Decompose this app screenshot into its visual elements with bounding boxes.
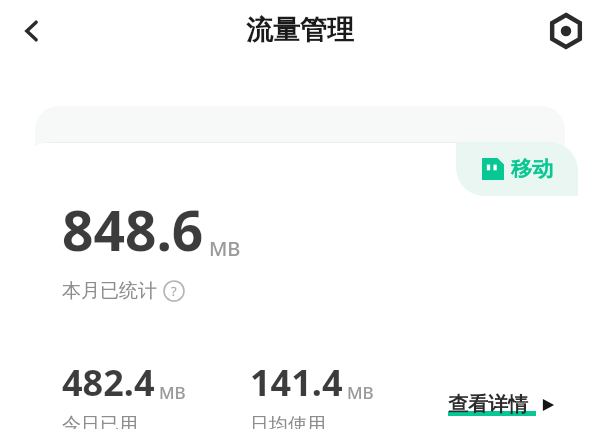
staticText: 848.6 bbox=[62, 192, 204, 267]
staticText: 141.4 bbox=[250, 358, 343, 407]
button[interactable]: 查看详情 bbox=[448, 392, 556, 417]
staticText: 流量管理 bbox=[246, 13, 354, 47]
staticText: ? bbox=[171, 282, 177, 300]
staticText: 今日已用 bbox=[62, 413, 138, 429]
staticText: 本月已统计 bbox=[62, 279, 157, 303]
staticText: 日均使用 bbox=[250, 413, 326, 429]
button[interactable]: 本月已统计 bbox=[62, 279, 185, 303]
staticText: MB bbox=[209, 235, 241, 262]
staticText: 移动 bbox=[511, 156, 553, 182]
staticText: 查看详情 bbox=[448, 392, 528, 417]
staticText: 482.4 bbox=[62, 358, 155, 407]
button[interactable]: Back bbox=[8, 7, 56, 55]
button[interactable]: 移动 bbox=[456, 142, 578, 196]
staticText: MB bbox=[347, 381, 374, 404]
staticText: MB bbox=[159, 381, 186, 404]
button[interactable]: Settings bbox=[542, 7, 590, 55]
